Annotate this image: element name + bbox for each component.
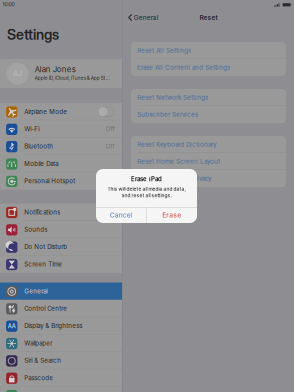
button[interactable]: Screen Time	[0, 256, 122, 273]
staticText: Display & Brightness	[24, 322, 82, 330]
button[interactable]: Subscriber Services	[131, 106, 286, 123]
button[interactable]: Control Centre	[0, 300, 122, 317]
staticText: Notifications	[24, 208, 60, 216]
button[interactable]: Do Not Disturb	[0, 238, 122, 256]
staticText: Mobile Data	[24, 160, 58, 167]
staticText: Reset Network Settings	[137, 94, 208, 101]
staticText: Wi-Fi	[24, 125, 39, 133]
staticText: Reset Home Screen Layout	[137, 158, 220, 165]
staticText: AJ	[13, 69, 22, 78]
button[interactable]: General	[123, 10, 165, 25]
staticText: Apple ID, iCloud, iTunes & App St…	[35, 75, 110, 81]
button[interactable]: Erase	[146, 207, 197, 223]
staticText: Do Not Disturb	[24, 243, 67, 251]
button[interactable]: Personal Hotspot	[0, 172, 122, 190]
staticText: Screen Time	[24, 260, 62, 268]
button[interactable]: AA	[0, 317, 122, 335]
staticText: Reset Keyboard Dictionary	[137, 141, 216, 148]
button[interactable]: Battery	[0, 387, 122, 392]
button[interactable]: Passcode	[0, 369, 122, 387]
button[interactable]: Cancel	[96, 207, 146, 223]
staticText: Airplane Mode	[24, 108, 67, 115]
staticText: Siri & Search	[24, 357, 61, 364]
staticText: Wallpaper	[24, 339, 52, 347]
staticText: Subscriber Services	[137, 111, 198, 118]
staticText: Erase iPad	[131, 175, 162, 183]
staticText: 10:00	[3, 1, 15, 7]
staticText: Reset All Settings	[137, 47, 191, 54]
staticText: General	[134, 13, 159, 21]
staticText: Sounds	[24, 226, 47, 233]
button[interactable]: Sounds	[0, 221, 122, 238]
staticText: Reset Location & Privacy	[137, 175, 211, 182]
button[interactable]: Reset Home Screen Layout	[131, 153, 286, 170]
staticText: Bluetooth	[24, 143, 53, 150]
staticText: Alan Jones	[35, 65, 76, 74]
button[interactable]: Reset All Settings	[131, 42, 286, 59]
button[interactable]: Bluetooth	[0, 138, 122, 155]
staticText: AA	[8, 323, 16, 330]
button[interactable]: Reset Location & Privacy	[131, 170, 286, 187]
staticText: Reset	[199, 13, 217, 21]
button[interactable]: Wi-Fi	[0, 120, 122, 138]
button[interactable]: Mobile Data	[0, 155, 122, 172]
staticText: General	[24, 287, 47, 295]
staticText: Cancel	[110, 211, 133, 219]
button[interactable]: Airplane Mode	[0, 103, 122, 120]
staticText: Erase	[162, 211, 181, 219]
button[interactable]: Reset Keyboard Dictionary	[131, 136, 286, 153]
button[interactable]: Reset Network Settings	[131, 89, 286, 106]
button[interactable]: AJ	[0, 59, 122, 88]
button[interactable]: Erase All Content and Settings	[131, 59, 286, 76]
staticText: Settings	[7, 26, 59, 43]
staticText: Passcode	[24, 374, 53, 382]
staticText: Erase All Content and Settings	[137, 64, 230, 71]
staticText: Personal Hotspot	[24, 177, 75, 185]
staticText: Off	[105, 143, 114, 150]
staticText: and reset all settings.	[121, 193, 171, 198]
button[interactable]: Siri & Search	[0, 352, 122, 369]
button[interactable]: Wallpaper	[0, 335, 122, 352]
staticText: Control Centre	[24, 305, 67, 312]
button[interactable]: Notifications	[0, 203, 122, 221]
staticText: This will delete all media and data,	[107, 186, 185, 192]
button[interactable]: General	[0, 282, 122, 300]
staticText: Off	[105, 125, 114, 133]
